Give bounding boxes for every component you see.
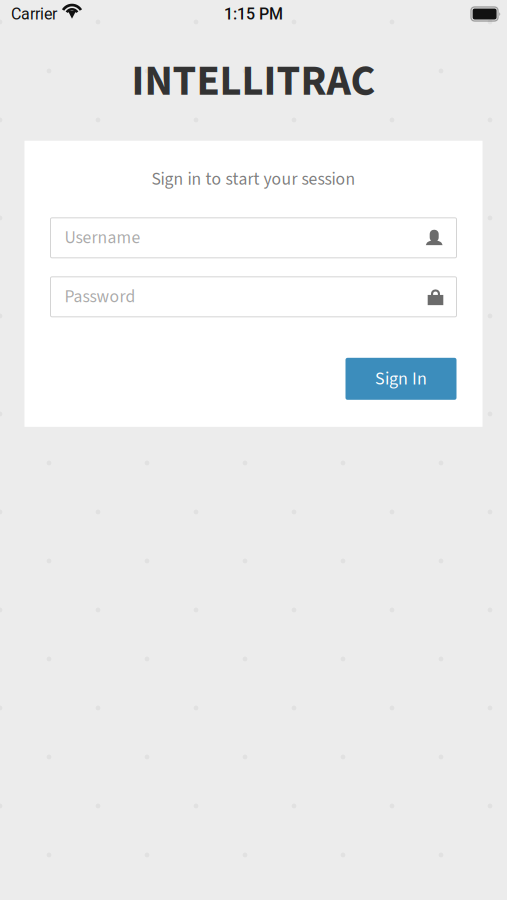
- button[interactable]: Sign In: [345, 358, 456, 400]
- staticText: INTELLITRAC: [131, 51, 375, 112]
- button[interactable]: Password: [50, 277, 456, 317]
- staticText: Carrier: [11, 5, 57, 23]
- button[interactable]: Username: [50, 218, 456, 258]
- staticText: 1:15 PM: [224, 5, 283, 23]
- staticText: Sign In: [375, 366, 427, 392]
- staticText: Sign in to start your session: [151, 167, 355, 192]
- staticText: Username: [64, 225, 140, 250]
- staticText: Password: [64, 284, 135, 309]
